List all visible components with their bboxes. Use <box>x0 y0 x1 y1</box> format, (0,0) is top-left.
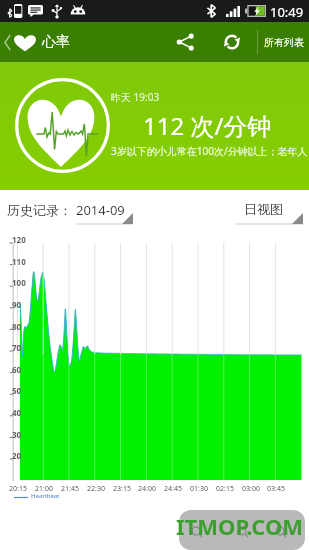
staticText: 21:00 <box>35 484 53 494</box>
staticText: 20:15 <box>9 484 27 494</box>
button[interactable]: 2014-09 <box>76 194 133 226</box>
staticText: 60 <box>12 364 22 375</box>
staticText: 90 <box>12 299 22 310</box>
staticText: 24:45 <box>164 484 182 494</box>
button[interactable]: Share <box>168 22 202 62</box>
staticText: ITMOP.COM <box>176 511 304 541</box>
staticText: 10:49 <box>270 3 304 21</box>
staticText: 21:45 <box>61 484 79 494</box>
staticText: 120 <box>12 234 26 245</box>
button[interactable]: 日视图 <box>235 194 303 226</box>
staticText: 01:30 <box>190 484 208 494</box>
staticText: 03:00 <box>242 484 260 494</box>
staticText: 心率 <box>42 33 70 51</box>
button[interactable]: 心率 <box>0 22 78 62</box>
staticText: 100 <box>12 277 26 288</box>
staticText: 日视图 <box>244 201 283 217</box>
staticText: 50 <box>12 385 22 396</box>
staticText: 所有列表 <box>264 36 304 49</box>
staticText: 22:30 <box>87 484 105 494</box>
button[interactable]: 所有列表 <box>258 22 309 62</box>
button[interactable]: Refresh <box>215 22 249 62</box>
staticText: 24:00 <box>138 484 156 494</box>
staticText: 80 <box>12 321 22 332</box>
staticText: 70 <box>12 342 22 353</box>
staticText: 历史记录： <box>7 202 72 218</box>
staticText: 110 <box>12 256 26 267</box>
staticText: 03:45 <box>267 484 285 494</box>
staticText: 23:15 <box>113 484 131 494</box>
staticText: 112 次/分钟 <box>143 109 272 142</box>
staticText: 2014-09 <box>76 201 125 219</box>
staticText: 3岁以下的小儿常在100次/分钟以上；老年人 <box>111 144 308 158</box>
staticText: 30 <box>12 429 22 440</box>
staticText: 40 <box>12 407 22 418</box>
staticText: Heartbeat <box>31 492 60 500</box>
staticText: 20 <box>12 450 22 461</box>
staticText: 昨天 19:03 <box>111 90 160 104</box>
staticText: 02:15 <box>216 484 234 494</box>
